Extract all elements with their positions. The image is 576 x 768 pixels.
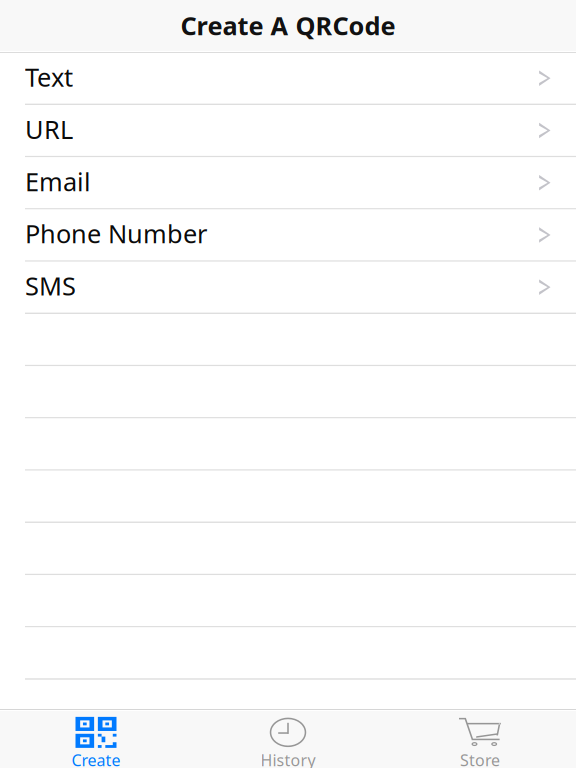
button[interactable]: Phone Number [0, 209, 576, 262]
staticText: Store [460, 749, 500, 768]
button[interactable]: Create [0, 711, 192, 768]
button[interactable]: Text [0, 53, 576, 105]
staticText: Email [25, 164, 91, 198]
button[interactable]: Email [0, 157, 576, 209]
staticText: Phone Number [25, 217, 207, 250]
staticText: URL [25, 112, 73, 146]
button[interactable]: History [192, 711, 384, 768]
button[interactable]: SMS [0, 262, 576, 314]
button[interactable]: URL [0, 105, 576, 157]
staticText: SMS [25, 269, 76, 303]
staticText: Text [25, 60, 73, 94]
staticText: Create [71, 749, 120, 768]
button[interactable]: Store [384, 711, 576, 768]
staticText: Create A QRCode [180, 9, 395, 42]
staticText: History [260, 749, 315, 768]
